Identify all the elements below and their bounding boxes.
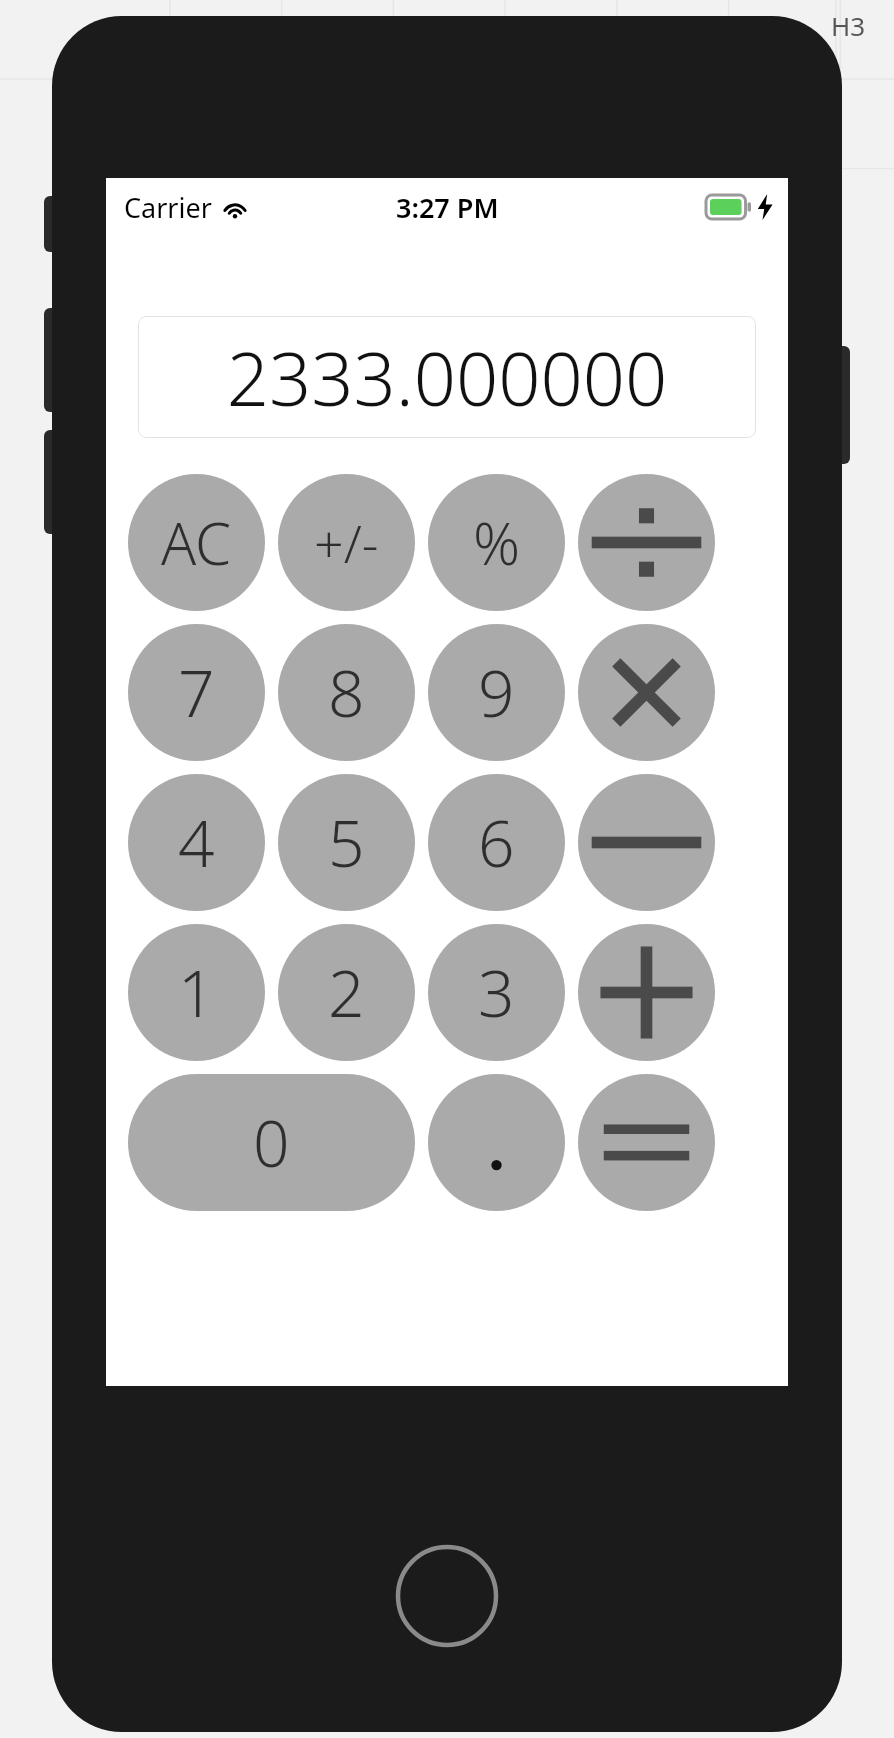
button[interactable]: Home xyxy=(395,1544,499,1648)
button[interactable]: 9 xyxy=(428,624,565,761)
button[interactable]: 8 xyxy=(278,624,415,761)
button[interactable]: 0 xyxy=(128,1074,415,1211)
button[interactable]: AC xyxy=(128,474,265,611)
button[interactable]: 4 xyxy=(128,774,265,911)
button[interactable]: Equals xyxy=(578,1074,715,1211)
button[interactable]: 5 xyxy=(278,774,415,911)
button[interactable]: Multiply xyxy=(578,624,715,761)
button[interactable]: 7 xyxy=(128,624,265,761)
button[interactable]: Add xyxy=(578,924,715,1061)
staticText: 8 xyxy=(328,649,365,736)
staticText: H3 xyxy=(831,8,866,43)
staticText: % xyxy=(473,503,521,582)
staticText: 0 xyxy=(253,1099,290,1186)
staticText: 3 xyxy=(478,949,515,1036)
staticText: Carrier xyxy=(124,189,212,226)
staticText: AC xyxy=(161,503,232,582)
button[interactable]: Decimal point xyxy=(428,1074,565,1211)
staticText: 2 xyxy=(328,949,365,1036)
staticText: 6 xyxy=(478,799,515,886)
staticText: 3:27 PM xyxy=(396,189,499,226)
button[interactable]: Subtract xyxy=(578,774,715,911)
staticText: 7 xyxy=(178,649,215,736)
staticText: 9 xyxy=(478,649,515,736)
staticText: 5 xyxy=(328,799,365,886)
button[interactable]: 6 xyxy=(428,774,565,911)
button[interactable]: 3 xyxy=(428,924,565,1061)
button[interactable]: 2 xyxy=(278,924,415,1061)
staticText: +/- xyxy=(314,507,379,578)
button[interactable]: % xyxy=(428,474,565,611)
staticText: 2333.000000 xyxy=(138,327,756,428)
button[interactable]: Divide xyxy=(578,474,715,611)
button[interactable]: 1 xyxy=(128,924,265,1061)
staticText: 4 xyxy=(178,799,215,886)
staticText: 1 xyxy=(178,949,215,1036)
button[interactable]: +/- xyxy=(278,474,415,611)
